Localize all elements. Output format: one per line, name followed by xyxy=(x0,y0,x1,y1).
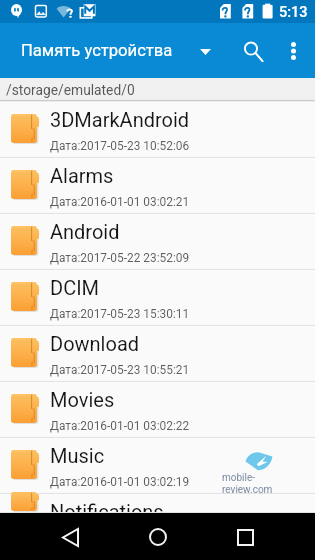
button[interactable]: Search xyxy=(230,28,276,74)
staticText: 3DMarkAndroid xyxy=(50,108,190,131)
button[interactable]: Back xyxy=(47,514,93,560)
staticText: Дата:2016-01-01 03:02:20 xyxy=(50,531,190,545)
button[interactable]: More options xyxy=(271,29,315,73)
button[interactable]: Home xyxy=(135,514,181,560)
staticText: Дата:2017-05-23 15:30:11 xyxy=(50,307,190,321)
staticText: Дата:2016-01-01 03:02:19 xyxy=(50,475,190,489)
button[interactable]: Download xyxy=(0,326,315,382)
button[interactable]: DCIM xyxy=(0,270,315,326)
staticText: Alarms xyxy=(50,164,114,187)
button[interactable]: Alarms xyxy=(0,158,315,214)
button[interactable]: Movies xyxy=(0,382,315,438)
button[interactable]: Android xyxy=(0,214,315,270)
staticText: 5:13 xyxy=(279,4,308,21)
staticText: Movies xyxy=(50,388,115,411)
staticText: DCIM xyxy=(50,276,100,299)
staticText: mobile-review.com xyxy=(222,472,304,496)
button[interactable]: 3DMarkAndroid xyxy=(0,102,315,158)
staticText: Дата:2017-05-23 10:52:06 xyxy=(50,139,190,153)
button[interactable]: Notifications xyxy=(0,494,315,513)
staticText: Дата:2017-05-23 10:55:21 xyxy=(50,363,190,377)
staticText: Download xyxy=(50,332,140,355)
staticText: Дата:2016-01-01 03:02:21 xyxy=(50,195,190,209)
staticText: Память устройства xyxy=(21,41,173,60)
staticText: Android xyxy=(50,220,120,243)
button[interactable]: Music xyxy=(0,438,315,494)
staticText: Notifications xyxy=(50,500,164,519)
staticText: Дата:2017-05-22 23:52:09 xyxy=(50,251,190,265)
button[interactable]: Recents xyxy=(222,514,268,560)
staticText: Дата:2016-01-01 03:02:22 xyxy=(50,419,190,433)
staticText: /storage/emulated/0 xyxy=(6,82,135,98)
button[interactable]: /storage/emulated/0 xyxy=(0,78,315,100)
button[interactable]: Память устройства xyxy=(0,23,216,78)
staticText: Music xyxy=(50,444,105,467)
